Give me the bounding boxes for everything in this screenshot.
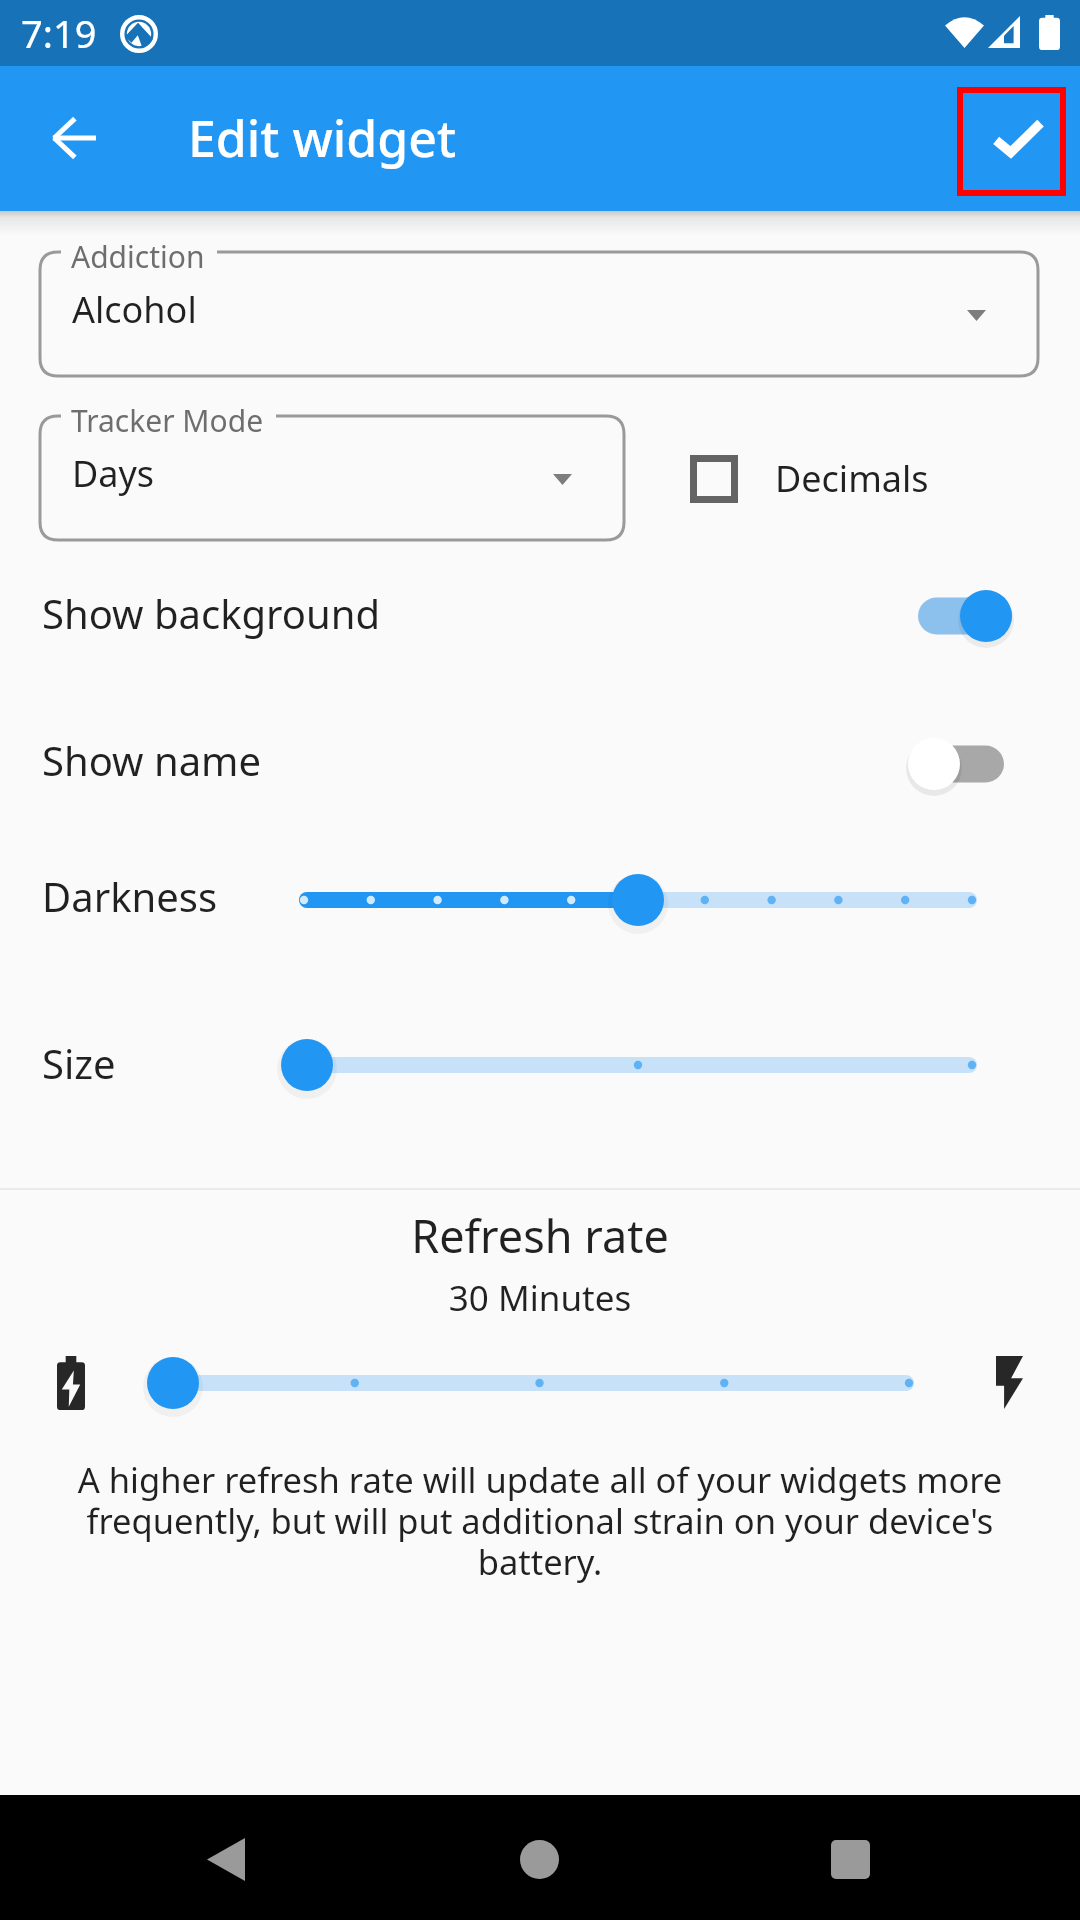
button[interactable]: Back [163,1797,288,1920]
button[interactable]: Show name [0,712,1080,816]
button[interactable]: Decimals [672,438,945,520]
staticText: Tracker Mode [71,400,264,441]
staticText: Alcohol [72,285,197,334]
button[interactable] [299,857,977,943]
button[interactable] [299,1022,977,1108]
staticText: Refresh rate [0,1205,1080,1266]
staticText: 30 Minutes [0,1274,1080,1322]
button[interactable] [165,1340,914,1426]
button[interactable]: Addiction [40,222,1038,376]
staticText: Size [42,1036,116,1090]
staticText: Show background [42,586,381,640]
button[interactable]: Show background [0,564,1080,668]
staticText: 7:19 [21,7,97,59]
staticText: Days [72,449,155,498]
button[interactable]: Tracker Mode [40,386,624,540]
staticText: Darkness [42,869,218,923]
staticText: A higher refresh rate will update all of… [60,1456,1020,1585]
button[interactable]: Navigate up [32,96,116,180]
staticText: Decimals [775,454,929,503]
button[interactable]: Recent apps [788,1797,913,1920]
staticText: Edit widget [188,104,457,172]
staticText: Addiction [71,236,205,277]
button[interactable]: Save [975,96,1059,180]
button[interactable]: Home [477,1797,602,1920]
staticText: Show name [42,733,262,787]
